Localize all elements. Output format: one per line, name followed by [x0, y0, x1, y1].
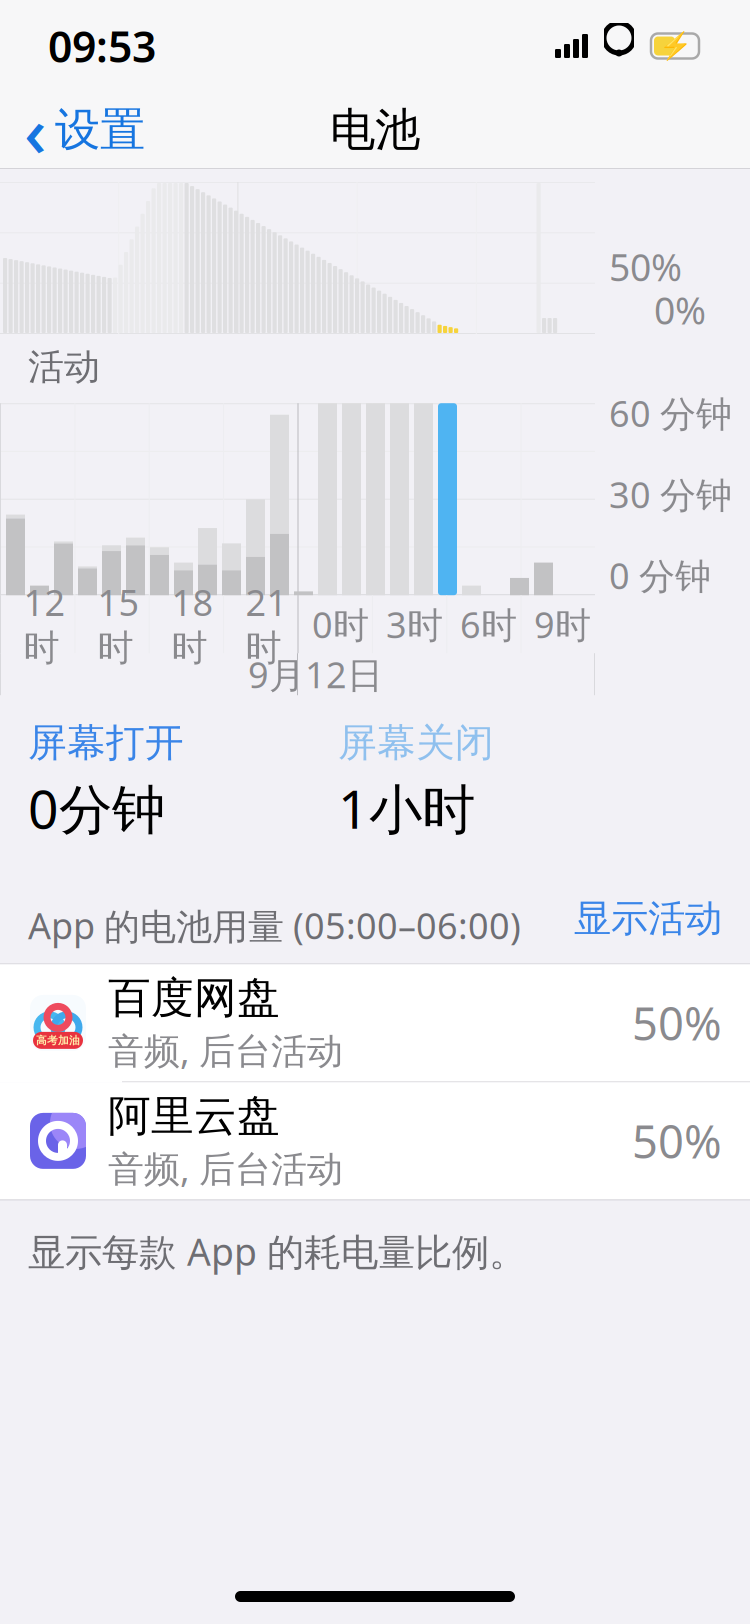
staticText: ‹	[24, 84, 47, 176]
staticText: 0时	[312, 600, 369, 648]
staticText: 音频, 后台活动	[108, 1144, 343, 1192]
staticText: 0分钟	[28, 773, 165, 843]
staticText: 6时	[460, 600, 517, 648]
staticText: 屏幕关闭	[338, 719, 494, 767]
button[interactable]: 高考加油	[0, 964, 750, 1082]
staticText: 高考加油	[36, 1034, 80, 1047]
staticText: 15时	[97, 578, 139, 670]
staticText: App 的电池用量 (05:00–06:00)	[28, 901, 521, 949]
staticText: 显示每款 App 的耗电量比例。	[28, 1226, 526, 1276]
staticText: 09:53	[48, 18, 156, 74]
staticText: 1小时	[338, 773, 475, 843]
staticText: 12时	[23, 578, 65, 670]
staticText: 18时	[171, 578, 213, 670]
staticText: 50%	[632, 1111, 722, 1171]
staticText: 0 分钟	[609, 551, 711, 599]
staticText: 设置	[55, 102, 145, 158]
staticText: 21时	[245, 578, 287, 670]
staticText: 显示活动	[574, 895, 722, 941]
button[interactable]: ‹	[0, 92, 163, 168]
staticText: 屏幕打开	[28, 719, 184, 767]
staticText: 0%	[654, 285, 706, 335]
staticText: 60 分钟	[609, 389, 732, 437]
staticText: 阿里云盘	[108, 1090, 280, 1142]
staticText: 电池	[330, 102, 420, 158]
button[interactable]: 显示活动	[546, 887, 750, 949]
staticText: 活动	[28, 345, 100, 389]
staticText: 50%	[632, 993, 722, 1053]
staticText: 50%	[609, 242, 682, 292]
staticText: 9时	[534, 600, 591, 648]
staticText: 30 分钟	[609, 470, 732, 518]
staticText: 音频, 后台活动	[108, 1026, 343, 1074]
staticText: ⚡	[658, 31, 691, 61]
staticText: 3时	[386, 600, 443, 648]
staticText: 9月12日	[248, 650, 383, 698]
button[interactable]: 阿里云盘	[0, 1082, 750, 1199]
staticText: 百度网盘	[108, 972, 280, 1024]
